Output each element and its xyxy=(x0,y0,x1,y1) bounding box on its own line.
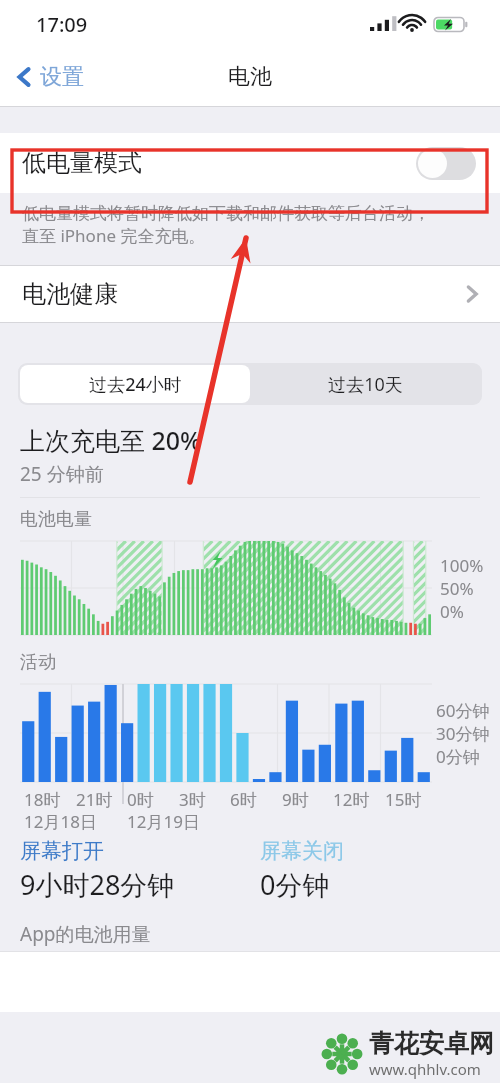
staticText: 30分钟 xyxy=(436,722,490,745)
staticText: 50% xyxy=(440,577,474,600)
staticText: 上次充电至 20% xyxy=(20,423,202,457)
staticText: www.qhhlv.com xyxy=(369,1059,481,1079)
staticText: 电池健康 xyxy=(22,279,118,309)
staticText: 低电量模式将暂时降低如下载和邮件获取等后台活动， xyxy=(22,203,430,224)
staticText: 9小时28分钟 xyxy=(20,866,175,903)
staticText: 12月18日 xyxy=(24,810,97,833)
staticText: 9时 xyxy=(282,788,309,811)
staticText: 低电量模式 xyxy=(22,148,142,178)
staticText: 屏幕关闭 xyxy=(260,838,344,864)
staticText: 0分钟 xyxy=(436,745,480,768)
staticText: 17:09 xyxy=(36,11,88,38)
staticText: App的电池用量 xyxy=(20,921,151,947)
staticText: 12时 xyxy=(333,788,370,811)
staticText: 青花安卓网 xyxy=(369,1028,494,1059)
staticText: 过去10天 xyxy=(328,372,403,397)
staticText: 25 分钟前 xyxy=(20,461,104,487)
staticText: 60分钟 xyxy=(436,699,490,722)
staticText: 设置 xyxy=(40,63,84,91)
staticText: 100% xyxy=(440,554,484,577)
staticText: 0分钟 xyxy=(260,866,330,903)
button[interactable]: 电池健康 xyxy=(0,266,500,322)
staticText: 15时 xyxy=(385,788,422,811)
staticText: 3时 xyxy=(179,788,206,811)
staticText: 0% xyxy=(440,600,464,623)
staticText: 活动 xyxy=(20,651,56,674)
staticText: 电池电量 xyxy=(20,508,92,531)
staticText: 18时 xyxy=(24,788,61,811)
staticText: 直至 iPhone 完全充电。 xyxy=(22,224,206,247)
staticText: 12月19日 xyxy=(127,810,200,833)
button[interactable]: 过去10天 xyxy=(250,365,480,403)
button[interactable]: 低电量模式 xyxy=(0,133,500,193)
staticText: 21时 xyxy=(76,788,113,811)
staticText: 屏幕打开 xyxy=(20,838,104,864)
button[interactable]: 设置 xyxy=(0,57,96,97)
staticText: 电池 xyxy=(228,63,272,91)
staticText: 6时 xyxy=(230,788,257,811)
staticText: 过去24小时 xyxy=(89,372,182,397)
button[interactable]: 低电量模式开关 xyxy=(416,147,476,180)
staticText: 0时 xyxy=(127,788,154,811)
button[interactable]: 过去24小时 xyxy=(20,365,250,403)
